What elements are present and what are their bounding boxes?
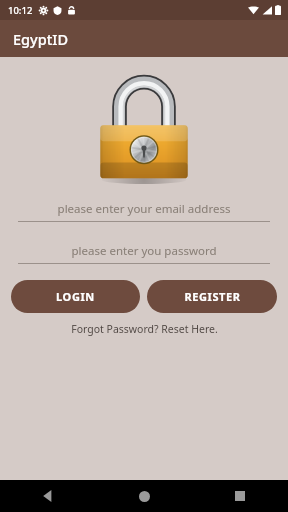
button[interactable]: please enter you password (18, 243, 270, 264)
staticText: please enter you password (18, 243, 270, 259)
staticText: Forgot Password? Reset Here. (71, 322, 218, 336)
button[interactable]: LOGIN (11, 280, 140, 313)
button[interactable]: please enter your email address (18, 201, 270, 222)
staticText: 10:12 (8, 4, 33, 17)
staticText: REGISTER (184, 289, 241, 304)
button[interactable]: Recent apps (192, 480, 288, 512)
staticText: EgyptID (13, 29, 68, 49)
other: Secure login padlock (96, 79, 192, 183)
staticText: please enter your email address (18, 201, 270, 217)
button[interactable]: Forgot Password? Reset Here. (0, 322, 288, 336)
button[interactable]: Home (96, 480, 192, 512)
staticText: LOGIN (56, 289, 95, 304)
button[interactable]: Back (0, 480, 96, 512)
button[interactable]: REGISTER (147, 280, 277, 313)
